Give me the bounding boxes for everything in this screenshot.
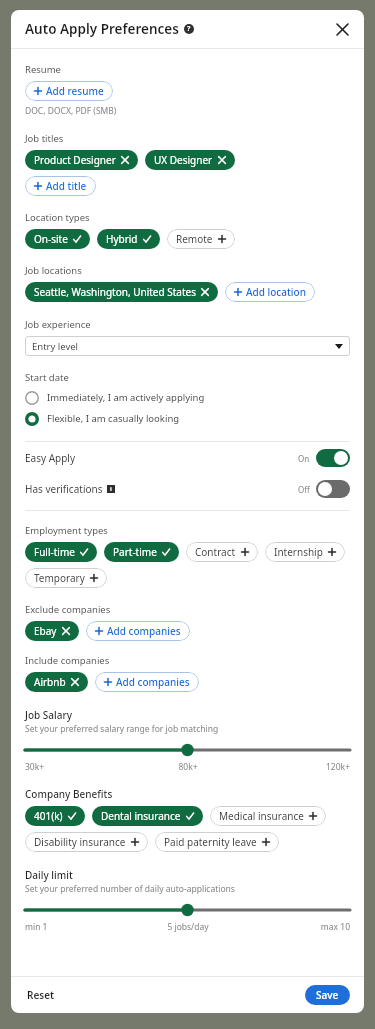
staticText: Job experience xyxy=(25,318,91,331)
staticText: Exclude companies xyxy=(25,603,111,616)
staticText: Immediately, I am actively applying xyxy=(47,391,205,404)
button[interactable]: Toggle off xyxy=(316,480,350,498)
staticText: Start date xyxy=(25,371,69,384)
staticText: Contract xyxy=(195,545,236,559)
staticText: Has verifications xyxy=(25,482,103,496)
staticText: max 10 xyxy=(242,921,350,933)
button[interactable]: Hybrid xyxy=(97,229,160,249)
button[interactable]: Seattle, Washington, United States xyxy=(25,282,218,302)
button[interactable]: Disability insurance xyxy=(25,832,148,852)
button[interactable]: Immediately, I am actively applying xyxy=(25,388,350,407)
staticText: Add title xyxy=(46,179,87,193)
button[interactable]: Internship xyxy=(265,542,345,562)
staticText: 80k+ xyxy=(134,761,242,773)
staticText: Job locations xyxy=(25,264,82,277)
button[interactable]: Remote xyxy=(167,229,235,249)
button[interactable]: Ebay xyxy=(25,621,79,641)
staticText: Company Benefits xyxy=(25,787,113,801)
staticText: Disability insurance xyxy=(34,835,126,849)
staticText: Internship xyxy=(274,545,323,559)
staticText: Add companies xyxy=(116,675,190,689)
staticText: Off xyxy=(298,484,310,495)
button[interactable]: Temporary xyxy=(25,568,107,588)
staticText: 120k+ xyxy=(242,761,350,773)
button[interactable]: Has verifications xyxy=(25,474,350,504)
staticText: Include companies xyxy=(25,654,110,667)
staticText: Employment types xyxy=(25,524,108,537)
button[interactable]: Reset xyxy=(25,984,57,1006)
button[interactable]: Part-time xyxy=(104,542,179,562)
staticText: Set your preferred salary range for job … xyxy=(25,723,219,735)
button[interactable]: Add resume xyxy=(25,81,113,101)
staticText: Product Designer xyxy=(34,153,116,167)
staticText: Job titles xyxy=(25,132,64,145)
button[interactable]: Entry level xyxy=(25,336,350,356)
button[interactable]: Toggle on xyxy=(316,449,350,467)
button[interactable]: UX Designer xyxy=(145,150,235,170)
staticText: Daily limit xyxy=(25,868,73,882)
button[interactable]: Airbnb xyxy=(25,672,88,692)
staticText: Dental insurance xyxy=(101,809,181,823)
staticText: Auto Apply Preferences xyxy=(25,20,179,38)
button[interactable]: Add companies xyxy=(86,621,190,641)
staticText: 5 jobs/day xyxy=(134,921,242,933)
staticText: Seattle, Washington, United States xyxy=(34,285,196,299)
staticText: min 1 xyxy=(25,921,134,933)
staticText: Resume xyxy=(25,63,61,76)
staticText: 30k+ xyxy=(25,761,134,773)
button[interactable]: Close xyxy=(328,15,356,43)
button[interactable]: Slider xyxy=(25,901,350,919)
button[interactable]: 401(k) xyxy=(25,806,85,826)
staticText: Ebay xyxy=(34,624,57,638)
button[interactable]: Slider xyxy=(25,741,350,759)
staticText: DOC, DOCX, PDF (SMB) xyxy=(25,105,117,117)
staticText: Temporary xyxy=(34,571,85,585)
button[interactable]: Add title xyxy=(25,176,96,196)
button[interactable]: Flexible, I am casually looking xyxy=(25,409,350,428)
staticText: Add companies xyxy=(107,624,181,638)
staticText: On-site xyxy=(34,232,68,246)
staticText: Location types xyxy=(25,211,90,224)
staticText: i xyxy=(110,485,112,493)
button[interactable]: Paid paternity leave xyxy=(155,832,279,852)
staticText: Medical insurance xyxy=(219,809,304,823)
button[interactable]: Add companies xyxy=(95,672,199,692)
button[interactable]: Easy Apply xyxy=(25,442,350,474)
button[interactable]: Help xyxy=(184,24,194,34)
button[interactable]: Full-time xyxy=(25,542,97,562)
button[interactable]: Add location xyxy=(225,282,315,302)
staticText: Remote xyxy=(176,232,213,246)
staticText: Add resume xyxy=(46,84,104,98)
staticText: Job Salary xyxy=(25,708,72,722)
button[interactable]: Dental insurance xyxy=(92,806,203,826)
button[interactable]: Contract xyxy=(186,542,258,562)
staticText: ? xyxy=(187,24,191,34)
staticText: Entry level xyxy=(32,340,79,353)
staticText: Part-time xyxy=(113,545,157,559)
staticText: Add location xyxy=(246,285,306,299)
staticText: UX Designer xyxy=(154,153,213,167)
staticText: 401(k) xyxy=(34,809,63,823)
staticText: Flexible, I am casually looking xyxy=(47,412,180,425)
button[interactable]: Medical insurance xyxy=(210,806,326,826)
staticText: Easy Apply xyxy=(25,451,76,465)
staticText: Full-time xyxy=(34,545,75,559)
staticText: Hybrid xyxy=(106,232,138,246)
staticText: Set your preferred number of daily auto-… xyxy=(25,883,235,895)
staticText: Paid paternity leave xyxy=(164,835,257,849)
button[interactable]: Product Designer xyxy=(25,150,138,170)
staticText: On xyxy=(298,453,310,464)
staticText: Reset xyxy=(27,988,55,1002)
staticText: Save xyxy=(316,988,339,1002)
staticText: Airbnb xyxy=(34,675,66,689)
button[interactable]: Save xyxy=(305,985,350,1005)
button[interactable]: On-site xyxy=(25,229,90,249)
